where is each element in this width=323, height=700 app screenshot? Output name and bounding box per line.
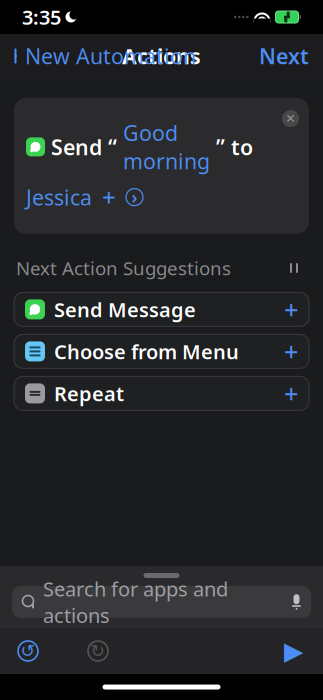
staticText: Repeat [54, 380, 124, 407]
staticText: + [284, 293, 298, 326]
staticText: Search for apps and actions [43, 575, 228, 628]
staticText: ↻ [90, 641, 105, 661]
staticText: Send [51, 133, 102, 161]
button[interactable]: Collapse suggestions [281, 257, 307, 278]
button[interactable]: Send [14, 98, 309, 234]
staticText: Send Message [54, 296, 196, 323]
button[interactable]: New Automation [0, 34, 196, 78]
staticText: ▶ [284, 637, 303, 665]
button[interactable]: Search for apps and actions [12, 586, 311, 618]
staticText: ” [216, 133, 225, 161]
staticText: + [284, 377, 298, 410]
staticText: Good morning [123, 118, 210, 175]
staticText: 3:35 [22, 4, 61, 30]
staticText: + [102, 181, 116, 213]
staticText: “ [108, 133, 117, 161]
staticText: New Automation [25, 42, 196, 70]
staticText: Choose from Menu [54, 338, 239, 365]
staticText: Next Action Suggestions [16, 256, 231, 280]
button[interactable]: Undo [8, 631, 48, 671]
button[interactable]: Redo [78, 631, 118, 671]
staticText: Jessica [26, 183, 92, 211]
staticText: › [131, 186, 137, 209]
button[interactable]: Run shortcut [274, 627, 313, 675]
staticText: ↺ [20, 641, 35, 661]
staticText: Next [259, 42, 309, 70]
staticText: + [284, 335, 298, 368]
button[interactable]: Repeat [14, 376, 309, 410]
button[interactable]: Send Message [14, 292, 309, 326]
button[interactable]: Choose from Menu [14, 334, 309, 368]
staticText: Actions [122, 42, 201, 70]
button[interactable]: Next [259, 34, 323, 78]
staticText: to [231, 133, 253, 161]
staticText: ✕ [285, 112, 295, 125]
